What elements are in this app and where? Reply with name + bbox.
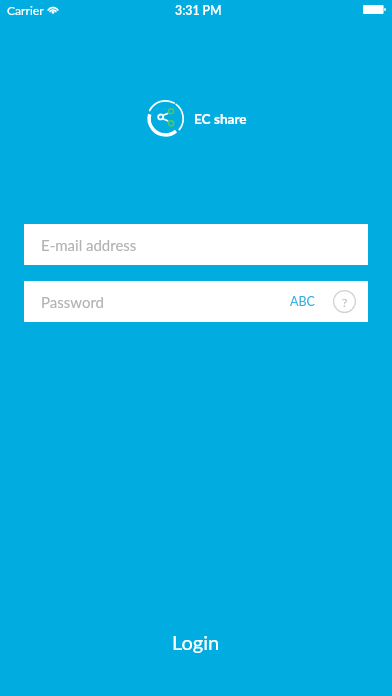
staticText: EC share <box>194 111 247 127</box>
button[interactable]: ABC <box>282 281 323 322</box>
button[interactable]: Password <box>24 281 368 322</box>
staticText: ABC <box>290 294 315 309</box>
staticText: E-mail address <box>41 236 137 254</box>
staticText: ? <box>342 295 348 309</box>
button[interactable]: Login <box>148 624 244 660</box>
staticText: Login <box>172 630 220 654</box>
button[interactable]: E-mail address <box>24 224 368 265</box>
button[interactable]: Help <box>333 290 356 313</box>
staticText: Carrier <box>7 3 44 18</box>
staticText: 3:31 PM <box>175 3 222 18</box>
staticText: Password <box>41 293 104 311</box>
